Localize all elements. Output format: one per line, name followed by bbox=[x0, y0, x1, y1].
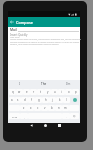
staticText: f bbox=[31, 98, 32, 102]
staticText: tempor incididunt ut labore et dolore ma… bbox=[10, 41, 80, 44]
staticText: y bbox=[47, 90, 49, 94]
button[interactable]: The bbox=[32, 80, 56, 88]
staticText: ☺ bbox=[73, 115, 76, 118]
staticText: i bbox=[61, 90, 62, 94]
staticText: veniam, quis nostrud exercitation ullamc… bbox=[10, 43, 59, 46]
staticText: n bbox=[58, 106, 60, 110]
button[interactable]: b bbox=[48, 105, 55, 111]
staticText: d bbox=[24, 98, 26, 102]
staticText: Insert Quickly bbox=[10, 33, 28, 37]
staticText: I bbox=[19, 82, 21, 86]
button[interactable]: ☺ bbox=[70, 113, 79, 119]
button[interactable]: x bbox=[27, 105, 34, 111]
button[interactable]: I bbox=[8, 80, 32, 88]
button[interactable]: w bbox=[16, 89, 23, 95]
button[interactable]: d bbox=[21, 97, 28, 103]
staticText: g bbox=[38, 98, 40, 102]
button[interactable]: k bbox=[56, 97, 63, 103]
staticText: Compose bbox=[16, 20, 34, 25]
button[interactable]: z bbox=[20, 105, 27, 111]
staticText: Lorem ipsum dolor sit amet, consectetur … bbox=[10, 38, 81, 41]
button[interactable]: p bbox=[72, 89, 79, 95]
staticText: a bbox=[11, 98, 13, 102]
button[interactable]: Recent apps bbox=[57, 123, 62, 128]
button[interactable]: q bbox=[9, 89, 16, 95]
staticText: h bbox=[45, 98, 47, 102]
staticText: s bbox=[17, 98, 19, 102]
staticText: x bbox=[30, 106, 32, 110]
button[interactable]: Navigate up bbox=[8, 18, 16, 26]
staticText: k bbox=[59, 98, 61, 102]
button[interactable]: e bbox=[23, 89, 30, 95]
button[interactable]: g bbox=[35, 97, 42, 103]
button[interactable]: ?123 bbox=[9, 113, 20, 119]
button[interactable]: m bbox=[62, 105, 69, 111]
button[interactable]: a bbox=[9, 97, 15, 103]
button[interactable]: y bbox=[44, 89, 51, 95]
button[interactable]: h bbox=[42, 97, 49, 103]
button[interactable]: u bbox=[51, 89, 58, 95]
button[interactable]: t bbox=[37, 89, 44, 95]
button[interactable]: Enter bbox=[73, 98, 77, 102]
staticText: l bbox=[66, 98, 67, 102]
staticText: o bbox=[68, 90, 70, 94]
staticText: w bbox=[18, 90, 21, 94]
staticText: j bbox=[52, 98, 53, 102]
button[interactable]: o bbox=[65, 89, 72, 95]
staticText: z bbox=[23, 106, 25, 110]
staticText: p bbox=[75, 90, 77, 94]
button[interactable]: Home bbox=[43, 123, 48, 128]
staticText: u bbox=[54, 90, 56, 94]
button[interactable]: i bbox=[58, 89, 65, 95]
button[interactable]: I'm bbox=[56, 80, 80, 88]
staticText: ?123 bbox=[12, 115, 18, 118]
staticText: m bbox=[64, 106, 67, 110]
button[interactable]: f bbox=[28, 97, 35, 103]
button[interactable]: Back bbox=[29, 123, 34, 128]
button[interactable]: n bbox=[55, 105, 62, 111]
staticText: r bbox=[33, 90, 35, 94]
staticText: The bbox=[41, 82, 47, 86]
button[interactable]: c bbox=[34, 105, 41, 111]
staticText: I'm bbox=[66, 82, 71, 86]
staticText: t bbox=[40, 90, 42, 94]
staticText: v bbox=[44, 106, 46, 110]
button[interactable]: r bbox=[30, 89, 37, 95]
staticText: . bbox=[66, 115, 67, 118]
staticText: Mail body bbox=[10, 36, 20, 39]
staticText: e bbox=[26, 90, 28, 94]
button[interactable]: l bbox=[63, 97, 70, 103]
staticText: c bbox=[37, 106, 39, 110]
button[interactable]: v bbox=[41, 105, 48, 111]
staticText: Mail bbox=[10, 27, 17, 32]
button[interactable]: j bbox=[49, 97, 56, 103]
staticText: q bbox=[12, 90, 14, 94]
staticText: b bbox=[51, 106, 53, 110]
button[interactable]: s bbox=[15, 97, 21, 103]
